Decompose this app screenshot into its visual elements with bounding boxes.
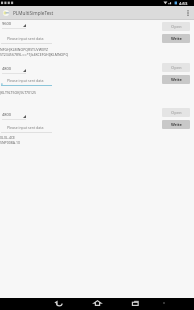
staticText: Please input sent data (7, 36, 44, 41)
staticText: 9600 (2, 21, 12, 26)
button[interactable]: Please input sent data (1, 78, 52, 86)
staticText: JKLT9LT5OKJ9LT70125 (0, 90, 37, 95)
staticText: Please input sent data (7, 78, 44, 83)
staticText: Open (171, 65, 182, 70)
staticText: Write (171, 36, 182, 41)
button[interactable]: Please input sent data (1, 36, 52, 44)
staticText: Please input sent data (7, 125, 44, 130)
staticText: Open (171, 24, 182, 29)
button[interactable]: Recent apps (125, 298, 146, 310)
button[interactable]: Write (162, 34, 190, 43)
button[interactable]: Menu (158, 298, 170, 310)
button[interactable]: Home (87, 298, 108, 310)
button[interactable]: Write (162, 120, 190, 129)
button[interactable]: Open (162, 63, 190, 72)
button[interactable]: 9600 (2, 21, 26, 30)
staticText: Write (171, 122, 182, 127)
button[interactable]: Back (48, 298, 69, 310)
staticText: SNP008A.1X (0, 140, 20, 145)
staticText: Open (171, 110, 182, 115)
button[interactable]: More options (182, 6, 194, 20)
button[interactable]: 4800 (2, 112, 26, 121)
button[interactable]: Open (162, 22, 190, 31)
staticText: 4800 (2, 112, 12, 117)
staticText: 4:53 (179, 1, 188, 7)
button[interactable]: Please input sent data (1, 125, 52, 133)
button[interactable]: 4800 (2, 66, 26, 75)
button[interactable]: Open (162, 108, 190, 117)
staticText: 4800 (2, 66, 12, 71)
staticText: PLMultiSimpleTest (13, 10, 54, 16)
button[interactable]: Write (162, 75, 190, 84)
staticText: NFGHJKLMNOPQRSTUVWXYZ (0, 47, 48, 52)
staticText: XLXL-4CE (0, 135, 16, 140)
staticText: Write (171, 77, 182, 82)
staticText: ST23456789L:==*1Jk4KCEFGHIJKLMNOPQ (0, 52, 69, 57)
